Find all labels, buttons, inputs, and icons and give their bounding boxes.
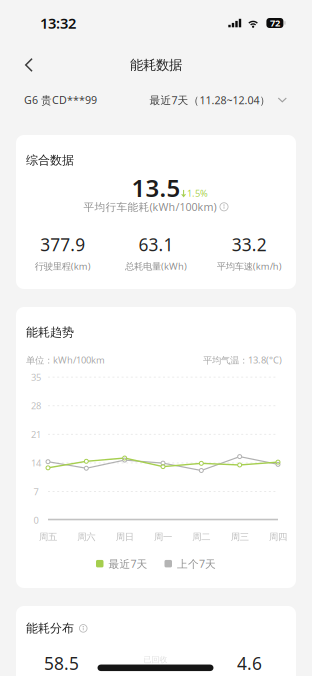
staticText: 能耗分布 bbox=[26, 621, 74, 636]
staticText: 能耗趋势 bbox=[26, 325, 74, 340]
staticText: 周一 bbox=[154, 531, 172, 543]
staticText: 72 bbox=[270, 17, 280, 29]
staticText: 总耗电量(kWh) bbox=[125, 260, 187, 272]
staticText: 最近7天（11.28~12.04） bbox=[150, 93, 271, 107]
staticText: 周六 bbox=[77, 531, 95, 543]
staticText: 35 bbox=[31, 371, 41, 383]
staticText: 13.5 bbox=[131, 172, 180, 204]
staticText: 平均行车能耗(kWh/100km) bbox=[83, 200, 216, 214]
staticText: 4.6 bbox=[237, 652, 262, 675]
staticText: 0 bbox=[33, 514, 38, 526]
staticText: 377.9 bbox=[40, 233, 85, 256]
staticText: G6 贵CD***99 bbox=[24, 93, 97, 107]
staticText: 最近7天 bbox=[108, 557, 147, 571]
button[interactable]: Back bbox=[12, 48, 46, 82]
staticText: 周三 bbox=[231, 531, 249, 543]
staticText: 上个7天 bbox=[177, 557, 216, 571]
staticText: 周五 bbox=[39, 531, 57, 543]
button[interactable]: 最近7天（11.28~12.04） bbox=[150, 88, 287, 112]
staticText: 1.5% bbox=[187, 187, 208, 199]
staticText: 综合数据 bbox=[26, 153, 74, 168]
staticText: 周日 bbox=[116, 531, 134, 543]
staticText: 平均气温：13.8(°C) bbox=[203, 354, 282, 366]
staticText: 周二 bbox=[192, 531, 210, 543]
staticText: 行驶里程(km) bbox=[35, 260, 91, 272]
staticText: 13:32 bbox=[40, 13, 76, 33]
staticText: 58.5 bbox=[44, 652, 79, 675]
staticText: 7 bbox=[33, 485, 38, 498]
staticText: 33.2 bbox=[232, 233, 267, 256]
staticText: 21 bbox=[31, 428, 41, 440]
staticText: 平均车速(km/h) bbox=[217, 260, 282, 272]
staticText: 能耗数据 bbox=[130, 57, 182, 73]
staticText: 28 bbox=[31, 399, 41, 412]
button[interactable]: G6 贵CD***99 bbox=[24, 88, 97, 112]
staticText: 已回收 bbox=[143, 655, 167, 664]
staticText: 63.1 bbox=[138, 233, 173, 256]
staticText: 单位：kWh/100km bbox=[26, 354, 105, 366]
staticText: 14 bbox=[31, 457, 41, 469]
staticText: 周四 bbox=[269, 531, 287, 543]
